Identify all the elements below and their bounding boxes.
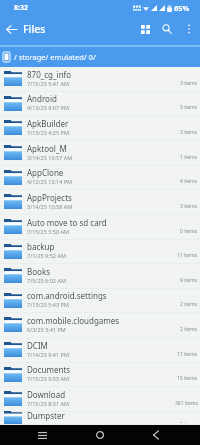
button[interactable]: Recent apps xyxy=(27,425,57,445)
staticText: 381 items xyxy=(175,400,198,407)
button[interactable]: DCIM xyxy=(0,338,200,363)
button[interactable]: Search xyxy=(156,15,178,43)
staticText: ApkBuilder xyxy=(27,118,69,129)
button[interactable]: Back xyxy=(141,425,171,445)
staticText: AppClone xyxy=(27,167,64,178)
button[interactable]: Auto move to sd card xyxy=(0,215,200,240)
staticText: Download xyxy=(27,389,66,400)
button[interactable]: ApkBuilder xyxy=(0,116,200,141)
button[interactable]: Documents xyxy=(0,363,200,387)
button[interactable]: backup xyxy=(0,240,200,264)
staticText: 1 items xyxy=(180,421,198,423)
staticText: / storage/ emulated/ 0/ xyxy=(14,52,96,62)
staticText: 7/1/25 9:52 AM xyxy=(27,252,66,259)
button[interactable]: Android xyxy=(0,92,200,116)
button[interactable]: com.android.settings xyxy=(0,289,200,313)
staticText: 9 items xyxy=(180,277,198,284)
button[interactable]: / storage/ emulated/ 0/ xyxy=(0,46,200,67)
staticText: 7/15/25 9:55 AM xyxy=(27,375,70,382)
staticText: Books xyxy=(27,266,50,277)
staticText: 7/13/25 5:43 PM xyxy=(27,301,69,308)
staticText: Dumpster xyxy=(27,410,65,421)
button[interactable]: 870_cg_info xyxy=(0,67,200,92)
button[interactable]: Apktool_M xyxy=(0,141,200,166)
button[interactable]: AppProjects xyxy=(0,190,200,215)
staticText: 17 items xyxy=(177,351,198,358)
staticText: DCIM xyxy=(27,340,48,351)
staticText: 7/15/25 5:50 AM xyxy=(27,228,70,235)
staticText: Apktool_M xyxy=(27,143,67,154)
staticText: 15 items xyxy=(177,375,198,382)
staticText: 3 items xyxy=(180,129,198,136)
staticText: 4 items xyxy=(180,178,198,185)
button[interactable]: Files xyxy=(23,22,46,36)
staticText: 7/13/25 4:25 PM xyxy=(27,129,69,136)
staticText: 1 items xyxy=(180,154,198,161)
staticText: 2 items xyxy=(180,301,198,308)
staticText: 4/12/25 12:14 PM xyxy=(27,178,73,185)
staticText: 6/3/25 3:41 PM xyxy=(27,326,66,333)
staticText: 65% xyxy=(174,3,190,13)
button[interactable]: Download xyxy=(0,387,200,412)
button[interactable]: Dumpster xyxy=(0,412,200,425)
button[interactable]: More options xyxy=(178,15,200,43)
staticText: 8:32 xyxy=(14,3,28,13)
button[interactable]: Books xyxy=(0,264,200,289)
staticText: 4/13/25 9:07 PM xyxy=(27,104,69,111)
staticText: com.android.settings xyxy=(27,290,107,301)
staticText: 3 items xyxy=(180,203,198,210)
staticText: 7/5/25 6:02 AM xyxy=(27,277,66,284)
staticText: 2 items xyxy=(180,326,198,333)
staticText: 3/14/25 10:58 AM xyxy=(27,203,73,210)
staticText: 11 items xyxy=(177,252,198,259)
staticText: backup xyxy=(27,241,55,252)
button[interactable]: Home xyxy=(85,425,115,445)
staticText: Android xyxy=(27,93,57,104)
staticText: AppProjects xyxy=(27,192,72,203)
staticText: 3 items xyxy=(180,80,198,87)
staticText: Documents xyxy=(27,364,71,375)
staticText: 0 items xyxy=(180,228,198,235)
staticText: Auto move to sd card xyxy=(27,217,107,228)
button[interactable]: com.mobile.cloudgames xyxy=(0,313,200,338)
staticText: 5 items xyxy=(180,104,198,111)
button[interactable]: Back xyxy=(0,15,22,43)
staticText: com.mobile.cloudgames xyxy=(27,315,120,326)
staticText: 7/14/25 9:41 PM xyxy=(27,351,69,358)
staticText: 3/14/25 10:57 AM xyxy=(27,154,73,161)
button[interactable]: Grid view xyxy=(134,15,156,43)
staticText: 7/15/25 5:41 AM xyxy=(27,80,70,87)
button[interactable]: AppClone xyxy=(0,166,200,190)
staticText: 870_cg_info xyxy=(27,69,72,80)
staticText: 7/15/25 8:31 AM xyxy=(27,400,70,407)
